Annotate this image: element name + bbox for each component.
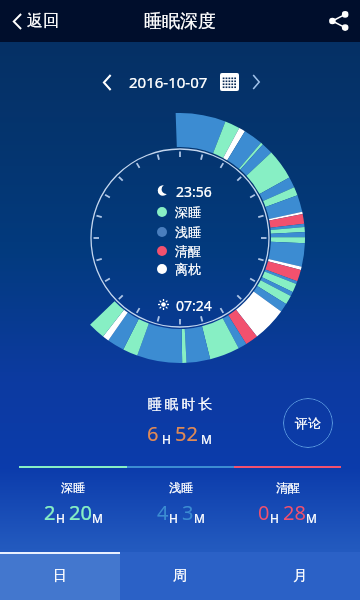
button[interactable]: Previous day (93, 68, 121, 96)
button[interactable]: Share (318, 0, 360, 42)
staticText: M (92, 510, 103, 526)
staticText: H (270, 510, 283, 526)
staticText: 3 (182, 499, 194, 526)
staticText: 23:56 (176, 182, 212, 198)
button[interactable]: 评论 (283, 398, 333, 448)
staticText: 20 (69, 499, 92, 526)
staticText: H (159, 431, 175, 447)
staticText: 2016-10-07 (129, 72, 208, 92)
staticText: M (194, 510, 205, 526)
staticText: 深睡 (175, 204, 201, 220)
staticText: 6 (147, 420, 159, 447)
staticText: 07:24 (176, 296, 212, 312)
staticText: 清醒 (276, 480, 300, 495)
button[interactable]: 返回 (0, 5, 71, 37)
staticText: 28 (283, 499, 306, 526)
staticText: 返回 (27, 11, 59, 31)
staticText: M (198, 431, 213, 447)
button[interactable]: 日 (0, 552, 120, 600)
staticText: 清醒 (175, 243, 201, 259)
staticText: 睡眠时长 (146, 396, 214, 414)
staticText: 浅睡 (175, 224, 201, 240)
staticText: 2 (44, 499, 56, 526)
staticText: 评论 (295, 415, 321, 431)
staticText: 浅睡 (169, 480, 193, 495)
staticText: H (56, 510, 69, 526)
staticText: 周 (173, 567, 187, 585)
staticText: 日 (53, 567, 67, 585)
staticText: 4 (157, 499, 169, 526)
staticText: 月 (293, 567, 307, 585)
staticText: 52 (175, 420, 198, 447)
staticText: M (306, 510, 317, 526)
button[interactable]: 月 (240, 552, 360, 600)
staticText: 0 (258, 499, 270, 526)
staticText: H (169, 510, 182, 526)
staticText: 离枕 (175, 261, 201, 277)
staticText: 深睡 (61, 480, 85, 495)
button[interactable]: 周 (120, 552, 240, 600)
staticText: 睡眠深度 (144, 10, 216, 33)
button[interactable]: Next day (245, 71, 267, 93)
